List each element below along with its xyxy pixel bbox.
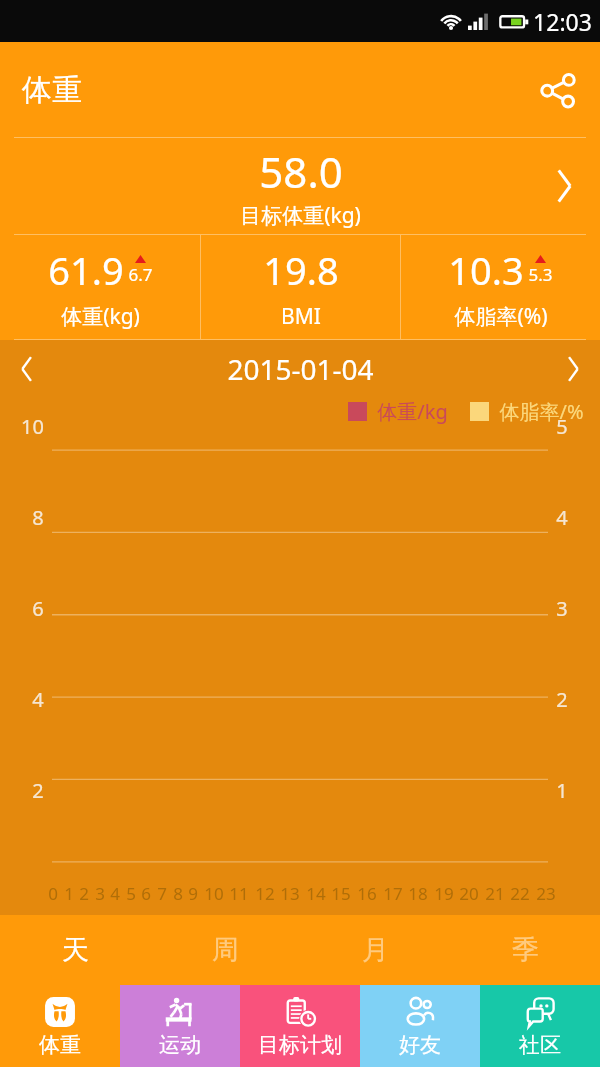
staticText: 15 <box>331 882 351 905</box>
button[interactable]: Next <box>554 343 592 395</box>
staticText: 16 <box>357 882 377 905</box>
staticText: 体脂率(%) <box>454 302 548 331</box>
staticText: 7 <box>157 882 167 905</box>
button[interactable]: 19.8 <box>201 235 400 339</box>
staticText: BMI <box>281 302 321 331</box>
staticText: 12:03 <box>533 6 592 37</box>
staticText: 4 <box>556 504 568 531</box>
button[interactable]: 好友 <box>360 985 480 1067</box>
button[interactable]: Share <box>532 64 584 116</box>
staticText: 18 <box>408 882 428 905</box>
staticText: 10.3 <box>448 244 524 296</box>
staticText: 2015-01-04 <box>227 350 374 388</box>
button[interactable]: 天 <box>0 915 150 985</box>
staticText: 61.9 <box>48 244 124 296</box>
button[interactable]: 体重 <box>10 61 94 119</box>
staticText: 体重 <box>39 1032 81 1058</box>
staticText: 体重(kg) <box>61 302 140 331</box>
staticText: 4 <box>110 882 120 905</box>
staticText: 58.0 <box>259 143 343 200</box>
staticText: 3 <box>556 595 568 622</box>
button[interactable]: 10.3 <box>401 235 600 339</box>
staticText: 5 <box>126 882 136 905</box>
staticText: 13 <box>280 882 300 905</box>
staticText: 1 <box>556 777 568 804</box>
staticText: 20 <box>459 882 479 905</box>
staticText: 12 <box>255 882 275 905</box>
staticText: 14 <box>306 882 326 905</box>
staticText: 2 <box>32 777 44 804</box>
staticText: 天 <box>62 933 89 967</box>
staticText: 19 <box>434 882 454 905</box>
staticText: 17 <box>383 882 403 905</box>
staticText: 目标体重(kg) <box>240 201 361 230</box>
staticText: 3 <box>95 882 105 905</box>
button[interactable]: 体重 <box>0 985 120 1067</box>
staticText: 2 <box>79 882 89 905</box>
staticText: 11 <box>229 882 249 905</box>
button[interactable]: 季 <box>450 915 600 985</box>
button[interactable]: 58.0 <box>0 138 600 234</box>
staticText: 月 <box>362 933 389 967</box>
staticText: 体重/kg <box>377 398 448 425</box>
staticText: 5 <box>556 413 568 440</box>
staticText: 运动 <box>159 1032 201 1058</box>
staticText: 23 <box>536 882 556 905</box>
staticText: 1 <box>64 882 74 905</box>
button[interactable]: 周 <box>150 915 300 985</box>
staticText: 10 <box>204 882 224 905</box>
staticText: 周 <box>212 933 239 967</box>
staticText: 21 <box>485 882 505 905</box>
staticText: 2 <box>556 686 568 713</box>
staticText: 季 <box>512 933 539 967</box>
button[interactable]: 61.9 <box>0 235 200 339</box>
staticText: 19.8 <box>263 244 339 296</box>
staticText: 目标计划 <box>258 1032 342 1058</box>
staticText: 5.3 <box>528 263 553 286</box>
staticText: 9 <box>188 882 198 905</box>
button[interactable]: 运动 <box>120 985 240 1067</box>
staticText: 8 <box>173 882 183 905</box>
staticText: 4 <box>32 686 44 713</box>
button[interactable]: Previous <box>8 343 46 395</box>
staticText: 8 <box>32 504 44 531</box>
staticText: 10 <box>21 413 44 440</box>
button[interactable]: 社区 <box>480 985 600 1067</box>
staticText: 22 <box>510 882 530 905</box>
staticText: 好友 <box>399 1032 441 1058</box>
staticText: 0 <box>48 882 58 905</box>
staticText: 6 <box>32 595 44 622</box>
staticText: 社区 <box>519 1032 561 1058</box>
button[interactable]: 月 <box>300 915 450 985</box>
staticText: 体脂率/% <box>499 398 584 425</box>
staticText: 6.7 <box>128 263 153 286</box>
staticText: 6 <box>141 882 151 905</box>
button[interactable]: 目标计划 <box>240 985 360 1067</box>
staticText: 体重 <box>22 71 82 109</box>
